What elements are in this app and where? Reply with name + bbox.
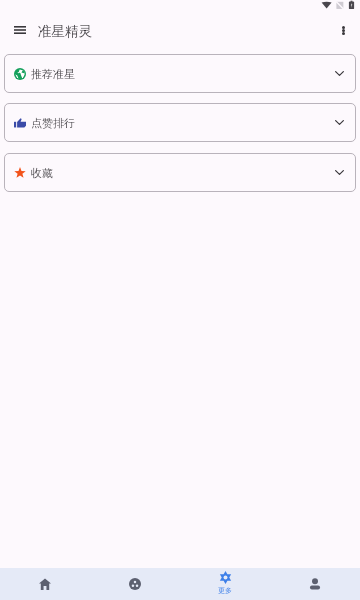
staticText: 更多 <box>218 586 232 595</box>
button[interactable]: 收藏 <box>4 153 356 192</box>
button[interactable]: 点赞排行 <box>4 103 356 142</box>
button[interactable]: More options <box>331 18 355 42</box>
staticText: 点赞排行 <box>31 116 75 130</box>
button[interactable]: 更多 <box>180 568 270 600</box>
button[interactable]: Profile <box>270 568 360 600</box>
button[interactable]: Home <box>0 568 90 600</box>
button[interactable]: Discover <box>90 568 180 600</box>
staticText: 推荐准星 <box>31 67 75 81</box>
button[interactable]: Open navigation menu <box>8 18 32 42</box>
button[interactable]: 推荐准星 <box>4 54 356 93</box>
staticText: 准星精灵 <box>38 23 92 40</box>
staticText: 收藏 <box>31 166 53 180</box>
